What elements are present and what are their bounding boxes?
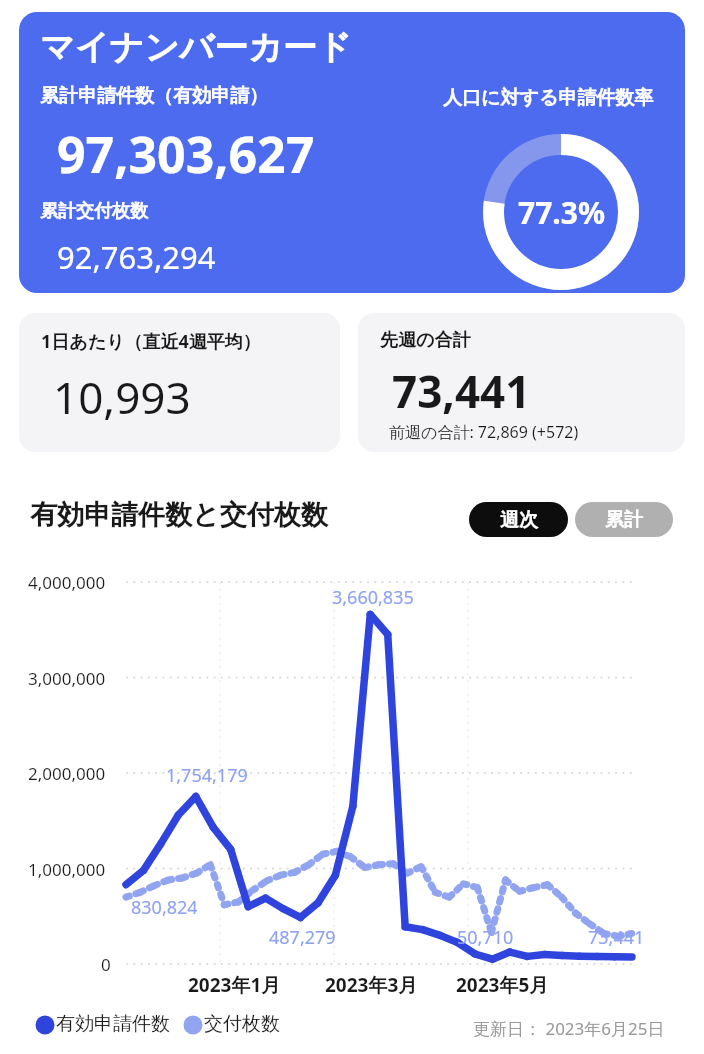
- staticText: 2023年1月: [188, 972, 281, 998]
- staticText: 先週の合計: [380, 329, 471, 352]
- button[interactable]: 1日あたり（直近4週平均）: [19, 313, 340, 452]
- staticText: 487,279: [269, 925, 336, 950]
- staticText: 2,000,000: [28, 762, 106, 785]
- staticText: 92,763,294: [57, 236, 216, 278]
- staticText: 830,824: [131, 895, 198, 920]
- staticText: 3,660,835: [332, 585, 414, 610]
- staticText: 0: [101, 953, 111, 976]
- staticText: 累計: [605, 508, 643, 532]
- button[interactable]: マイナンバーカード: [19, 12, 685, 293]
- button[interactable]: 週次: [469, 502, 568, 537]
- staticText: マイナンバーカード: [40, 26, 352, 69]
- staticText: 交付枚数: [204, 1012, 280, 1036]
- staticText: 50,710: [457, 925, 514, 950]
- staticText: 更新日： 2023年6月25日: [473, 1017, 665, 1040]
- button[interactable]: 先週の合計: [358, 313, 685, 452]
- staticText: 4,000,000: [28, 571, 106, 594]
- staticText: 1,000,000: [28, 858, 106, 881]
- staticText: 累計交付枚数: [40, 200, 148, 223]
- staticText: 週次: [500, 508, 538, 532]
- staticText: 人口に対する申請件数率: [443, 86, 654, 110]
- staticText: 有効申請件数と交付枚数: [30, 498, 328, 532]
- staticText: 1,754,179: [166, 763, 248, 788]
- staticText: 累計申請件数（有効申請）: [40, 84, 268, 108]
- button[interactable]: 累計: [575, 502, 673, 537]
- staticText: 2023年5月: [456, 972, 549, 998]
- staticText: 前週の合計: 72,869 (+572): [389, 421, 579, 443]
- staticText: 3,000,000: [28, 667, 106, 690]
- staticText: 有効申請件数: [56, 1012, 170, 1036]
- staticText: 73,441: [392, 361, 531, 421]
- staticText: 1日あたり（直近4週平均）: [41, 329, 261, 354]
- staticText: 73,441: [588, 925, 645, 950]
- staticText: 2023年3月: [325, 972, 418, 998]
- staticText: 97,303,627: [57, 120, 315, 188]
- staticText: 77.3%: [518, 192, 605, 233]
- staticText: 10,993: [53, 367, 191, 427]
